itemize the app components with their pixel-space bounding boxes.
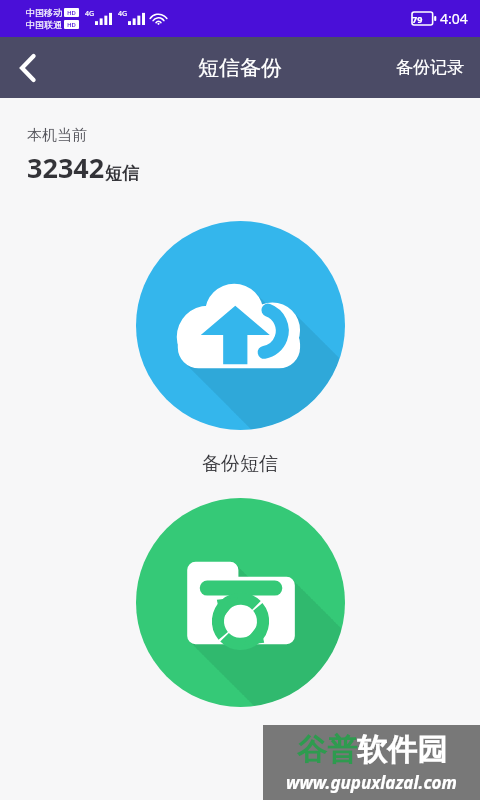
button[interactable]: 备份记录 <box>396 57 464 78</box>
staticText: www.gupuxlazal.com <box>286 771 457 794</box>
staticText: 备份记录 <box>396 57 464 78</box>
staticText: HD <box>67 9 76 17</box>
button[interactable]: 备份短信 <box>136 221 345 430</box>
staticText: 短信备份 <box>198 55 282 81</box>
staticText: 中国联通 <box>26 19 62 30</box>
staticText: 备份短信 <box>202 452 278 476</box>
staticText: 79 <box>412 13 423 25</box>
button[interactable]: 返回 <box>0 40 56 96</box>
staticText: 4G <box>118 9 128 19</box>
staticText: 短信 <box>105 163 139 184</box>
staticText: 中国移动 <box>26 7 62 18</box>
staticText: 本机当前 <box>27 126 87 145</box>
staticText: 谷普 <box>297 731 357 769</box>
staticText: 4:04 <box>440 9 468 28</box>
staticText: 32342 <box>27 149 105 186</box>
staticText: 4G <box>85 9 95 19</box>
staticText: HD <box>67 21 76 29</box>
staticText: 软件园 <box>357 731 447 769</box>
button[interactable]: 恢复短信 <box>136 498 345 707</box>
